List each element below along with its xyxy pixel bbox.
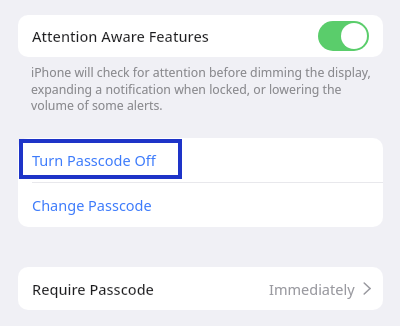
- staticText: Attention Aware Features: [32, 26, 209, 46]
- button[interactable]: Attention Aware Features: [18, 15, 383, 57]
- button[interactable]: Change Passcode: [18, 183, 383, 227]
- button[interactable]: Attention Aware Features toggle, on: [318, 21, 369, 51]
- staticText: Change Passcode: [32, 195, 152, 215]
- button[interactable]: Require Passcode: [18, 267, 383, 310]
- staticText: Turn Passcode Off: [32, 150, 156, 170]
- staticText: iPhone will check for attention before d…: [31, 64, 371, 113]
- button[interactable]: Turn Passcode Off: [18, 138, 383, 182]
- staticText: Immediately: [269, 279, 355, 299]
- staticText: Require Passcode: [32, 279, 154, 299]
